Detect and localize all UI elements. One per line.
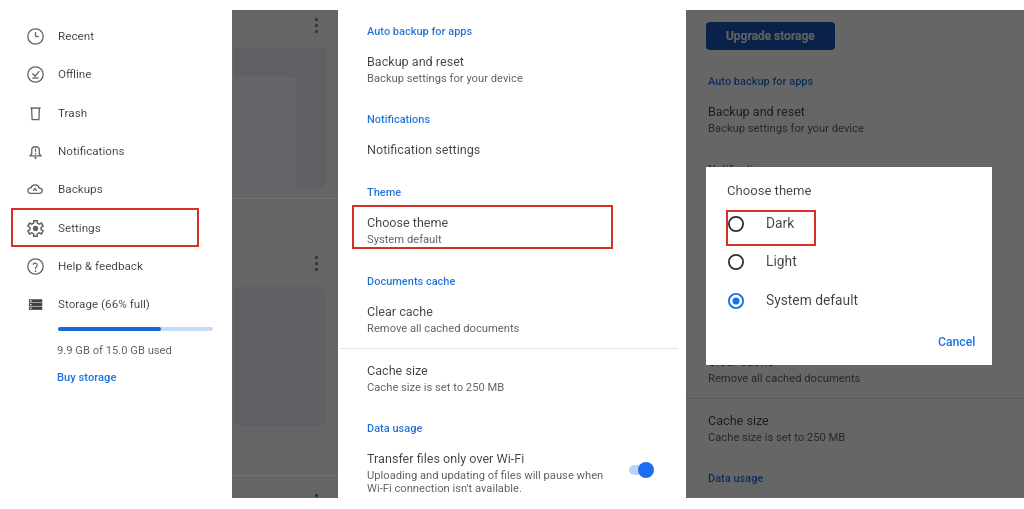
staticText: Remove all cached documents (367, 322, 520, 335)
staticText: Uploading and updating of files will pau… (367, 469, 604, 482)
staticText: Wi-Fi connection isn't available. (367, 482, 522, 495)
staticText: Notifications (58, 144, 125, 158)
button[interactable]: Notification settings (367, 142, 667, 157)
staticText: Cache size (708, 413, 769, 428)
staticText: Buy storage (57, 371, 117, 384)
staticText: Data usage (708, 472, 764, 485)
staticText: Notification settings (367, 142, 481, 157)
button[interactable]: Recent (12, 20, 212, 52)
staticText: Auto backup for apps (367, 25, 473, 38)
button[interactable]: Notifications (367, 113, 431, 126)
staticText: Storage (66% full) (58, 297, 150, 311)
button[interactable]: Theme (367, 186, 402, 199)
button[interactable]: Cache size (367, 363, 667, 394)
button[interactable]: Buy storage (57, 371, 117, 384)
button[interactable]: Offline (12, 58, 212, 90)
button[interactable]: Dark (720, 208, 960, 240)
staticText: Clear cache (708, 354, 774, 369)
staticText: Dark (766, 215, 795, 231)
button[interactable]: Transfer files only over Wi-Fi toggle (626, 460, 660, 480)
staticText: Cache size is set to 250 MB (708, 431, 846, 444)
button[interactable]: Storage (66% full) (12, 288, 212, 320)
staticText: System default (708, 283, 783, 296)
button[interactable]: Trash (12, 97, 212, 129)
staticText: Auto backup for apps (708, 75, 814, 88)
staticText: Offline (58, 67, 92, 81)
button[interactable]: Clear cache (367, 304, 667, 335)
staticText: Clear cache (367, 304, 433, 319)
staticText: Recent (58, 29, 94, 43)
button[interactable]: Transfer files only over Wi-Fi (367, 451, 617, 495)
staticText: 9.9 GB of 15.0 GB used (57, 344, 172, 357)
staticText: Backup settings for your device (367, 72, 523, 85)
staticText: Backup and reset (708, 104, 805, 119)
staticText: Notification settings (708, 192, 822, 207)
staticText: Help & feedback (58, 259, 143, 273)
button[interactable] (352, 205, 613, 249)
staticText: Backups (58, 182, 103, 196)
button[interactable]: Backup and reset (367, 54, 667, 85)
staticText: Cache size is set to 250 MB (367, 381, 505, 394)
button[interactable]: Cancel (938, 335, 976, 349)
button[interactable]: Documents cache (367, 275, 456, 288)
staticText: Backup and reset (367, 54, 464, 69)
staticText: Cancel (938, 335, 976, 349)
staticText: Notifications (367, 113, 431, 126)
staticText: System default (367, 233, 442, 246)
staticText: Documents cache (367, 275, 456, 288)
staticText: Light (766, 253, 797, 269)
staticText: System default (766, 292, 859, 308)
button[interactable]: Upgrade storage (706, 22, 835, 50)
staticText: Notifications (708, 163, 772, 176)
button[interactable]: Data usage (367, 422, 423, 435)
staticText: Transfer files only over Wi-Fi (367, 451, 525, 466)
staticText: Trash (58, 106, 88, 120)
button[interactable]: Backups (12, 173, 212, 205)
staticText: Backup settings for your device (708, 122, 864, 135)
staticText: Settings (58, 221, 101, 235)
staticText: Choose theme (727, 183, 812, 198)
staticText: Theme (367, 186, 402, 199)
staticText: Cache size (367, 363, 428, 378)
button[interactable]: Auto backup for apps (367, 25, 473, 38)
button[interactable]: Light (720, 246, 960, 278)
button[interactable]: Settings (12, 212, 212, 244)
staticText: Theme (708, 236, 743, 249)
button[interactable]: Notifications (12, 135, 212, 167)
staticText: Upgrade storage (726, 29, 815, 43)
button[interactable]: Help & feedback (12, 250, 212, 282)
staticText: Remove all cached documents (708, 372, 861, 385)
staticText: Choose theme (708, 265, 790, 280)
button[interactable]: System default (720, 285, 960, 317)
staticText: Choose theme (367, 215, 449, 230)
staticText: Data usage (367, 422, 423, 435)
